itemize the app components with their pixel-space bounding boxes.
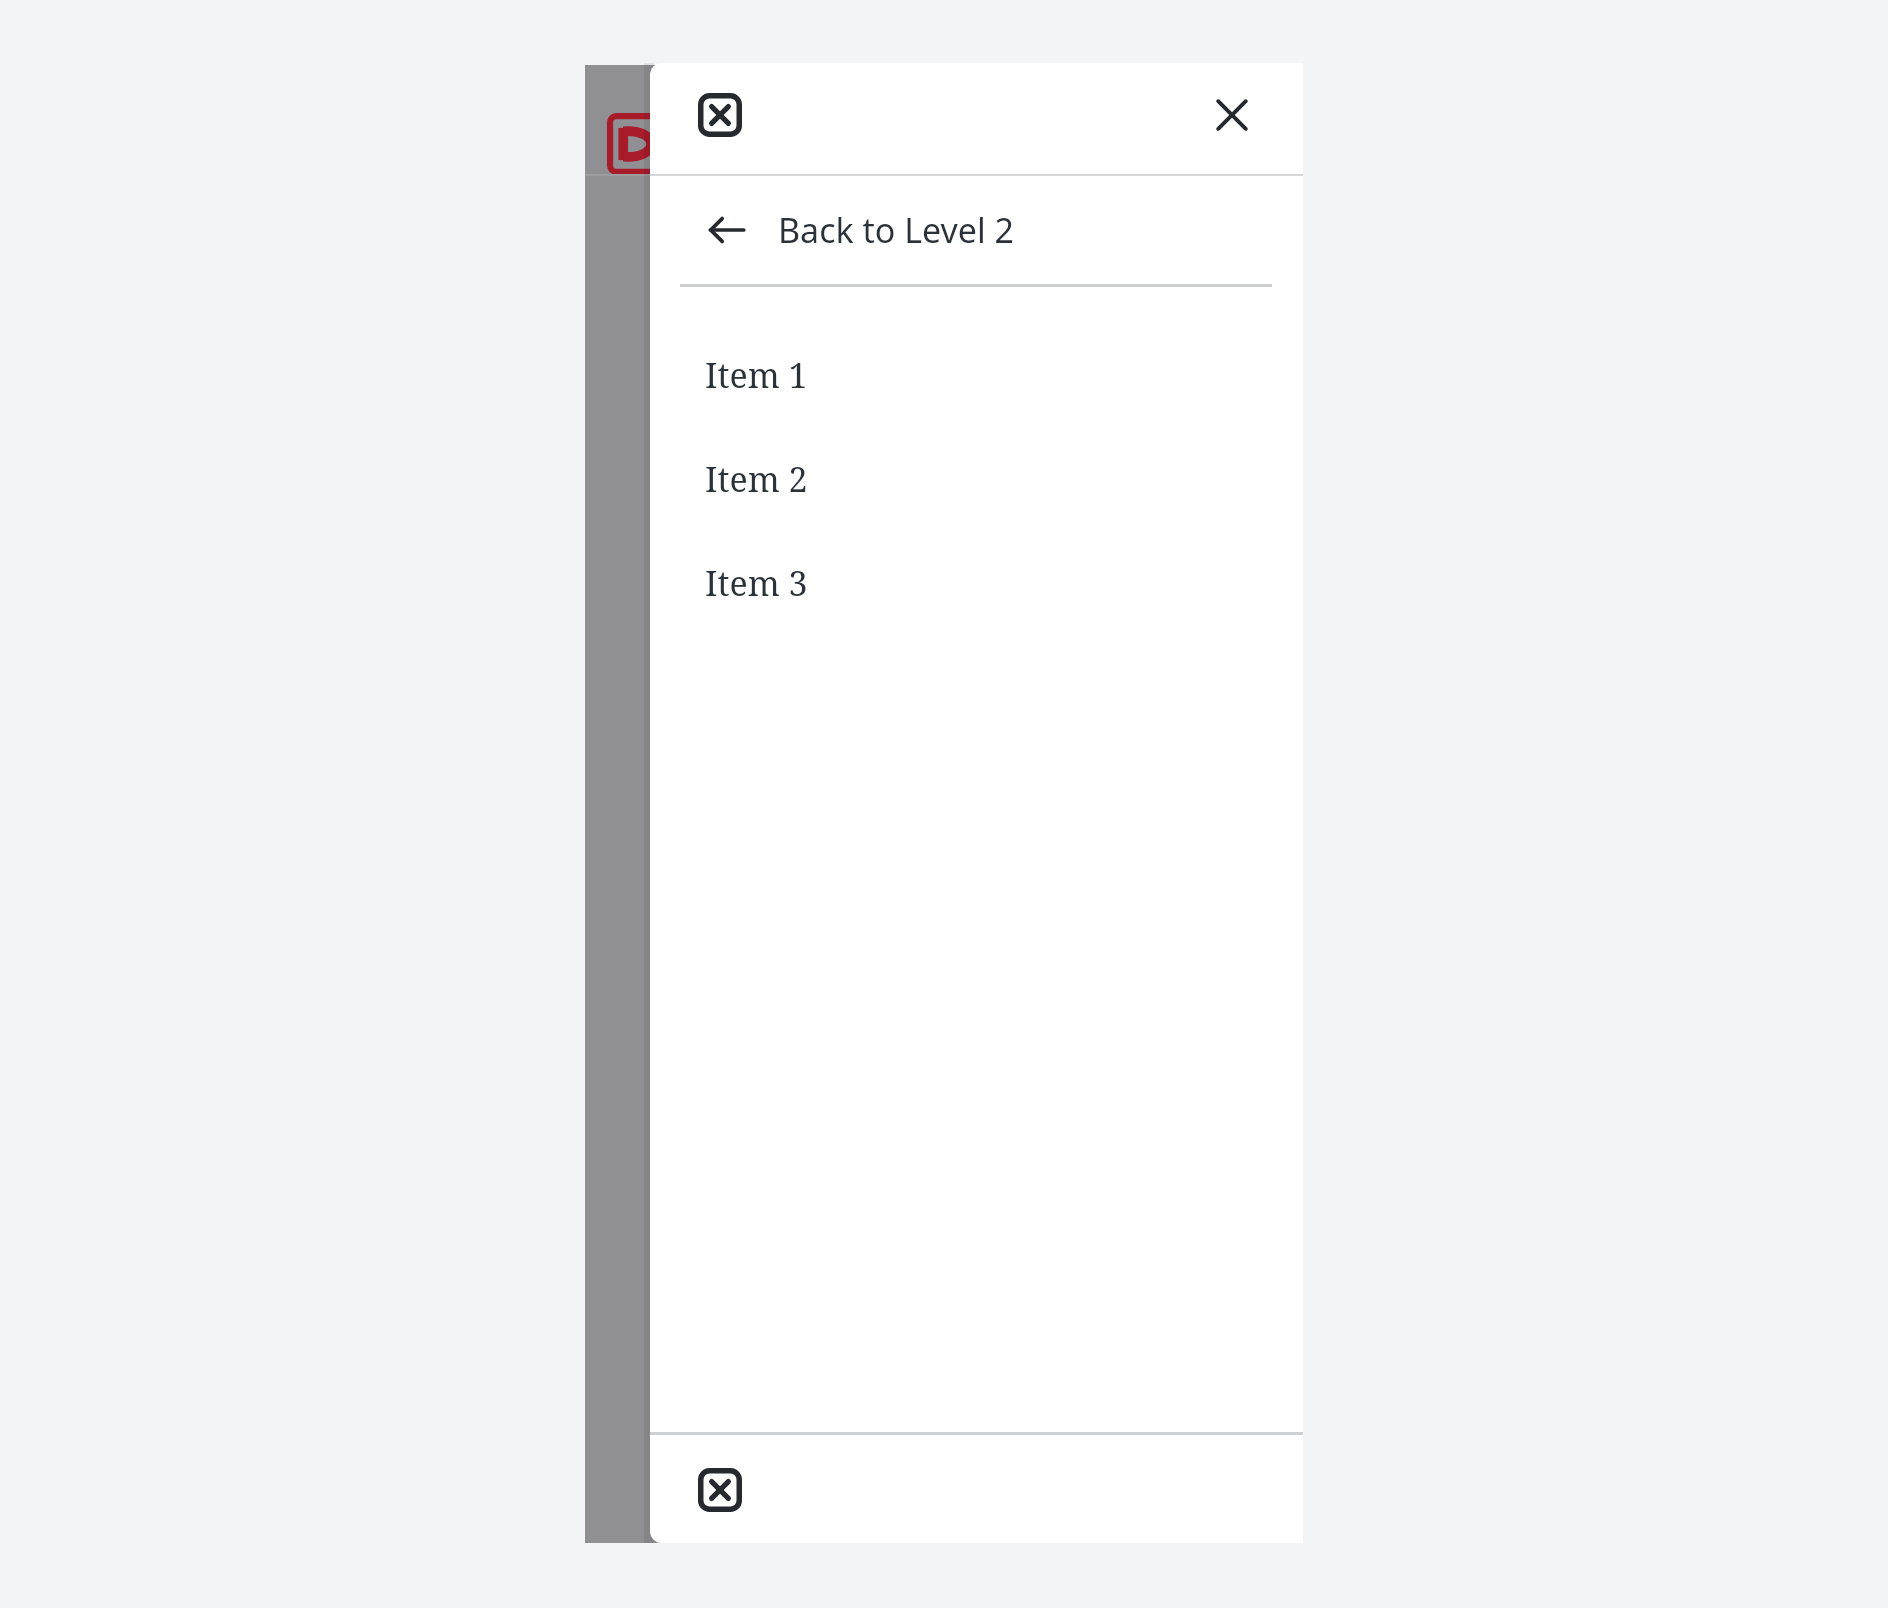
button[interactable]: Back to Level 2 (650, 176, 1303, 284)
button[interactable]: Item 1 (650, 323, 1303, 427)
staticText: Item 3 (705, 560, 808, 606)
staticText: Item 1 (705, 352, 808, 398)
staticText: Back to Level 2 (778, 207, 1014, 253)
button[interactable]: Close menu (698, 1468, 742, 1512)
button[interactable]: Close menu (698, 93, 742, 137)
button[interactable]: Item 3 (650, 531, 1303, 635)
staticText: Item 2 (705, 456, 808, 502)
button[interactable]: Close (1209, 92, 1255, 138)
button[interactable]: Item 2 (650, 427, 1303, 531)
